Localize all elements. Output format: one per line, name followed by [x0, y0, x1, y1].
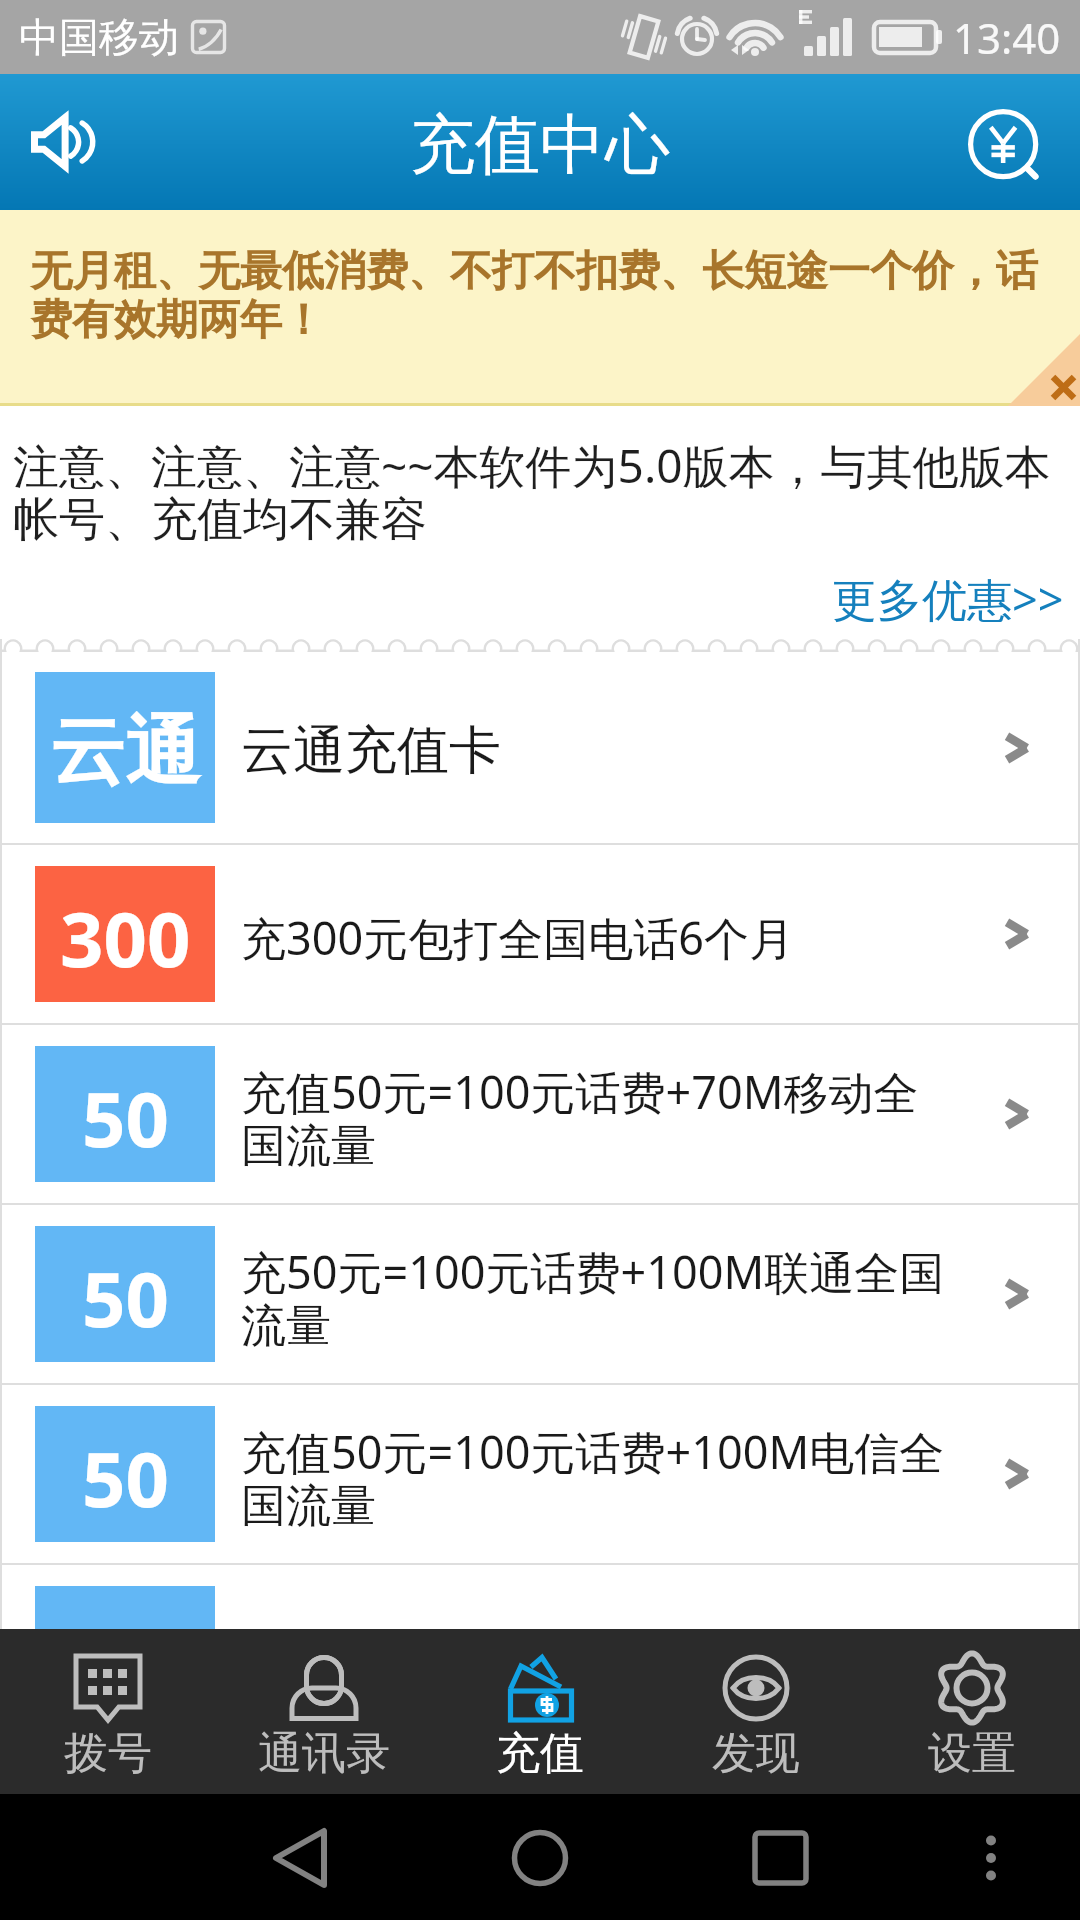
button[interactable]: 100 — [0, 1565, 1080, 1629]
staticText: 发现 — [712, 1726, 800, 1781]
button[interactable]: 通讯录 — [216, 1629, 432, 1794]
staticText: 云通充值卡 — [241, 718, 956, 784]
button[interactable]: Announcements — [0, 74, 124, 210]
button[interactable]: 更多优惠>> — [832, 568, 1080, 639]
staticText: 充值 — [496, 1726, 584, 1781]
button[interactable]: 300 — [0, 845, 1080, 1023]
button[interactable]: 发现 — [648, 1629, 864, 1794]
staticText: 充值50元=100元话费+70M移动全国流量 — [241, 1061, 956, 1174]
staticText: 50 — [82, 1246, 169, 1350]
staticText: 13:40 — [953, 9, 1061, 66]
staticText: 更多优惠>> — [832, 568, 1064, 629]
staticText: 无月租、无最低消费、不打不扣费、长短途一个价，话费有效期两年！ — [30, 245, 1056, 346]
staticText: 云通 — [50, 705, 200, 799]
button[interactable]: 充值 — [432, 1629, 648, 1794]
staticText: 充50元=100元话费+100M联通全国流量 — [241, 1241, 956, 1354]
staticText: 50 — [82, 1426, 169, 1530]
staticText: 充值50元=100元话费+100M电信全国流量 — [241, 1421, 956, 1534]
staticText: 拨号 — [64, 1726, 152, 1781]
staticText: 充300元包打全国电话6个月 — [241, 907, 956, 968]
staticText: 注意、注意、注意~~本软件为5.0版本，与其他版本帐号、充值均不兼容 — [13, 434, 1054, 548]
button[interactable]: Close banner — [1008, 334, 1080, 406]
staticText: 充值中心 — [410, 104, 670, 186]
button[interactable]: 拨号 — [0, 1629, 216, 1794]
button[interactable]: Search price — [926, 74, 1080, 210]
staticText: 设置 — [928, 1726, 1016, 1781]
staticText: 300 — [60, 886, 191, 990]
staticText: 中国移动 — [19, 12, 179, 62]
button[interactable]: 设置 — [864, 1629, 1080, 1794]
button[interactable]: 云通 — [0, 652, 1080, 843]
button[interactable]: 50 — [0, 1205, 1080, 1383]
staticText: 通讯录 — [258, 1726, 390, 1781]
button[interactable]: 50 — [0, 1385, 1080, 1563]
button[interactable]: 50 — [0, 1025, 1080, 1203]
staticText: 50 — [82, 1066, 169, 1170]
